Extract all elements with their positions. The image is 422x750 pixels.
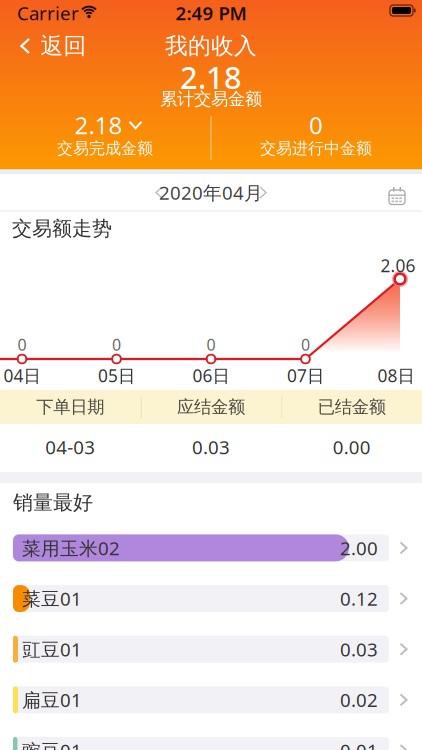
staticText: 0.03 (340, 637, 378, 662)
staticText: 0.03 (192, 435, 230, 459)
button[interactable]: 扁豆01 (13, 686, 411, 713)
button[interactable]: Pick date (382, 182, 412, 212)
staticText: 04-03 (45, 435, 95, 459)
staticText: 菜豆01 (22, 586, 82, 611)
staticText: 下单日期 (36, 396, 104, 418)
button[interactable]: 菜豆01 (13, 585, 411, 612)
staticText: 0.00 (333, 435, 371, 459)
staticText: 交易额走势 (12, 216, 112, 241)
staticText: 销量最好 (13, 490, 93, 515)
staticText: 0 (301, 334, 310, 355)
staticText: 07日 (287, 364, 324, 387)
staticText: 菜用玉米02 (22, 535, 120, 560)
staticText: 04日 (3, 364, 40, 387)
button[interactable]: 返回 (16, 31, 92, 61)
staticText: Carrier (17, 1, 79, 25)
staticText: 0 (112, 334, 121, 355)
staticText: 2:49 PM (175, 1, 246, 25)
staticText: 扁豆01 (22, 687, 82, 712)
button[interactable]: 2.18 (29, 113, 189, 137)
button[interactable]: Previous month (146, 179, 172, 205)
staticText: 0 (206, 334, 215, 355)
staticText: 0 (17, 334, 26, 355)
staticText: 累计交易金额 (160, 88, 262, 110)
staticText: 我的收入 (165, 32, 257, 60)
staticText: 返回 (40, 32, 86, 60)
staticText: 0.01 (340, 738, 378, 750)
staticText: 2020年04月 (159, 180, 263, 205)
button[interactable]: 豇豆01 (13, 636, 411, 663)
staticText: 0.02 (340, 687, 378, 712)
button[interactable]: 菜用玉米02 (13, 534, 411, 561)
staticText: 应结金额 (177, 396, 245, 418)
staticText: 06日 (192, 364, 229, 387)
button[interactable]: 豌豆01 (13, 737, 411, 750)
button[interactable]: Next month (250, 179, 276, 205)
staticText: 交易进行中金额 (260, 139, 372, 158)
staticText: 2.18 (180, 57, 242, 97)
staticText: 0 (309, 109, 323, 141)
staticText: 0.12 (340, 586, 378, 611)
staticText: 08日 (377, 364, 414, 387)
staticText: 05日 (98, 364, 135, 387)
staticText: 2.06 (380, 254, 415, 277)
staticText: 已结金额 (318, 396, 386, 418)
staticText: 交易完成金额 (57, 139, 153, 158)
staticText: 豇豆01 (22, 637, 82, 662)
staticText: 2.18 (74, 109, 122, 141)
staticText: 2.00 (340, 535, 378, 560)
staticText: 豌豆01 (22, 738, 82, 750)
